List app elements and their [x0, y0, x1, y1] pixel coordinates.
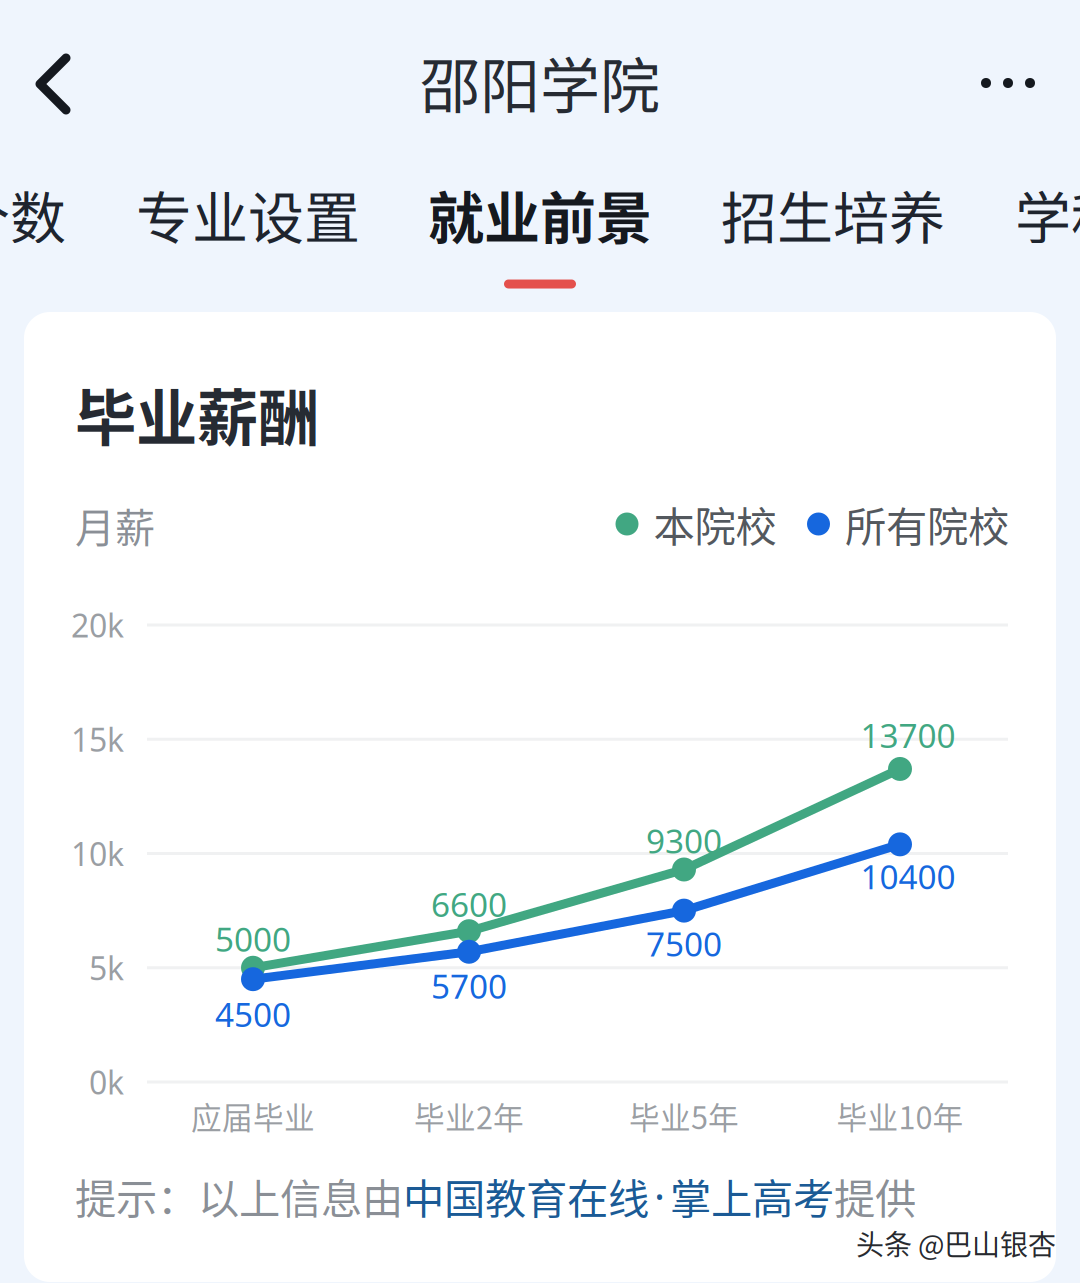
staticText: 中国教育在线: [403, 1166, 649, 1226]
staticText: 15k: [71, 718, 124, 760]
staticText: 13700: [860, 713, 955, 757]
button[interactable]: 就业前景: [420, 168, 660, 260]
button[interactable]: 专业设置: [128, 168, 368, 260]
staticText: 邵阳学院: [420, 39, 660, 125]
staticText: 个数: [0, 173, 66, 255]
staticText: 0k: [89, 1061, 124, 1103]
staticText: 本院校: [653, 494, 776, 554]
staticText: 毕业2年: [414, 1094, 524, 1138]
staticText: 4500: [215, 992, 291, 1036]
staticText: 提示：以上信息由: [75, 1166, 403, 1226]
staticText: 20k: [71, 604, 124, 646]
staticText: 7500: [646, 921, 722, 966]
staticText: 提供: [834, 1166, 916, 1226]
staticText: 5000: [215, 917, 291, 961]
staticText: 掌上高考: [670, 1166, 834, 1226]
button[interactable]: 本院校: [615, 494, 776, 554]
button[interactable]: More options: [952, 35, 1064, 131]
staticText: 头条 @巴山银杏: [856, 1223, 1056, 1263]
staticText: 毕业10年: [836, 1094, 963, 1138]
button[interactable]: Back: [0, 28, 109, 140]
staticText: 5k: [89, 946, 124, 989]
staticText: 10k: [71, 832, 124, 875]
staticText: ·: [654, 1169, 665, 1223]
staticText: 招生培养: [721, 173, 945, 255]
staticText: 10400: [860, 854, 955, 898]
staticText: 就业前景: [428, 173, 652, 255]
staticText: 6600: [431, 882, 507, 926]
staticText: 应届毕业: [191, 1094, 315, 1138]
button[interactable]: 招生培养: [713, 168, 953, 260]
staticText: 5700: [431, 964, 507, 1008]
staticText: 9300: [646, 818, 722, 863]
button[interactable]: 提示：以上信息由: [75, 1166, 1015, 1226]
staticText: 毕业薪酬: [75, 370, 319, 458]
staticText: 学科: [1015, 173, 1080, 255]
staticText: 所有院校: [845, 494, 1009, 554]
staticText: 专业设置: [136, 173, 360, 255]
staticText: 毕业5年: [629, 1094, 739, 1138]
button[interactable]: 所有院校: [807, 494, 1009, 554]
button[interactable]: 学科: [951, 168, 1080, 260]
staticText: 月薪: [75, 496, 155, 554]
button[interactable]: 个数: [0, 168, 130, 260]
